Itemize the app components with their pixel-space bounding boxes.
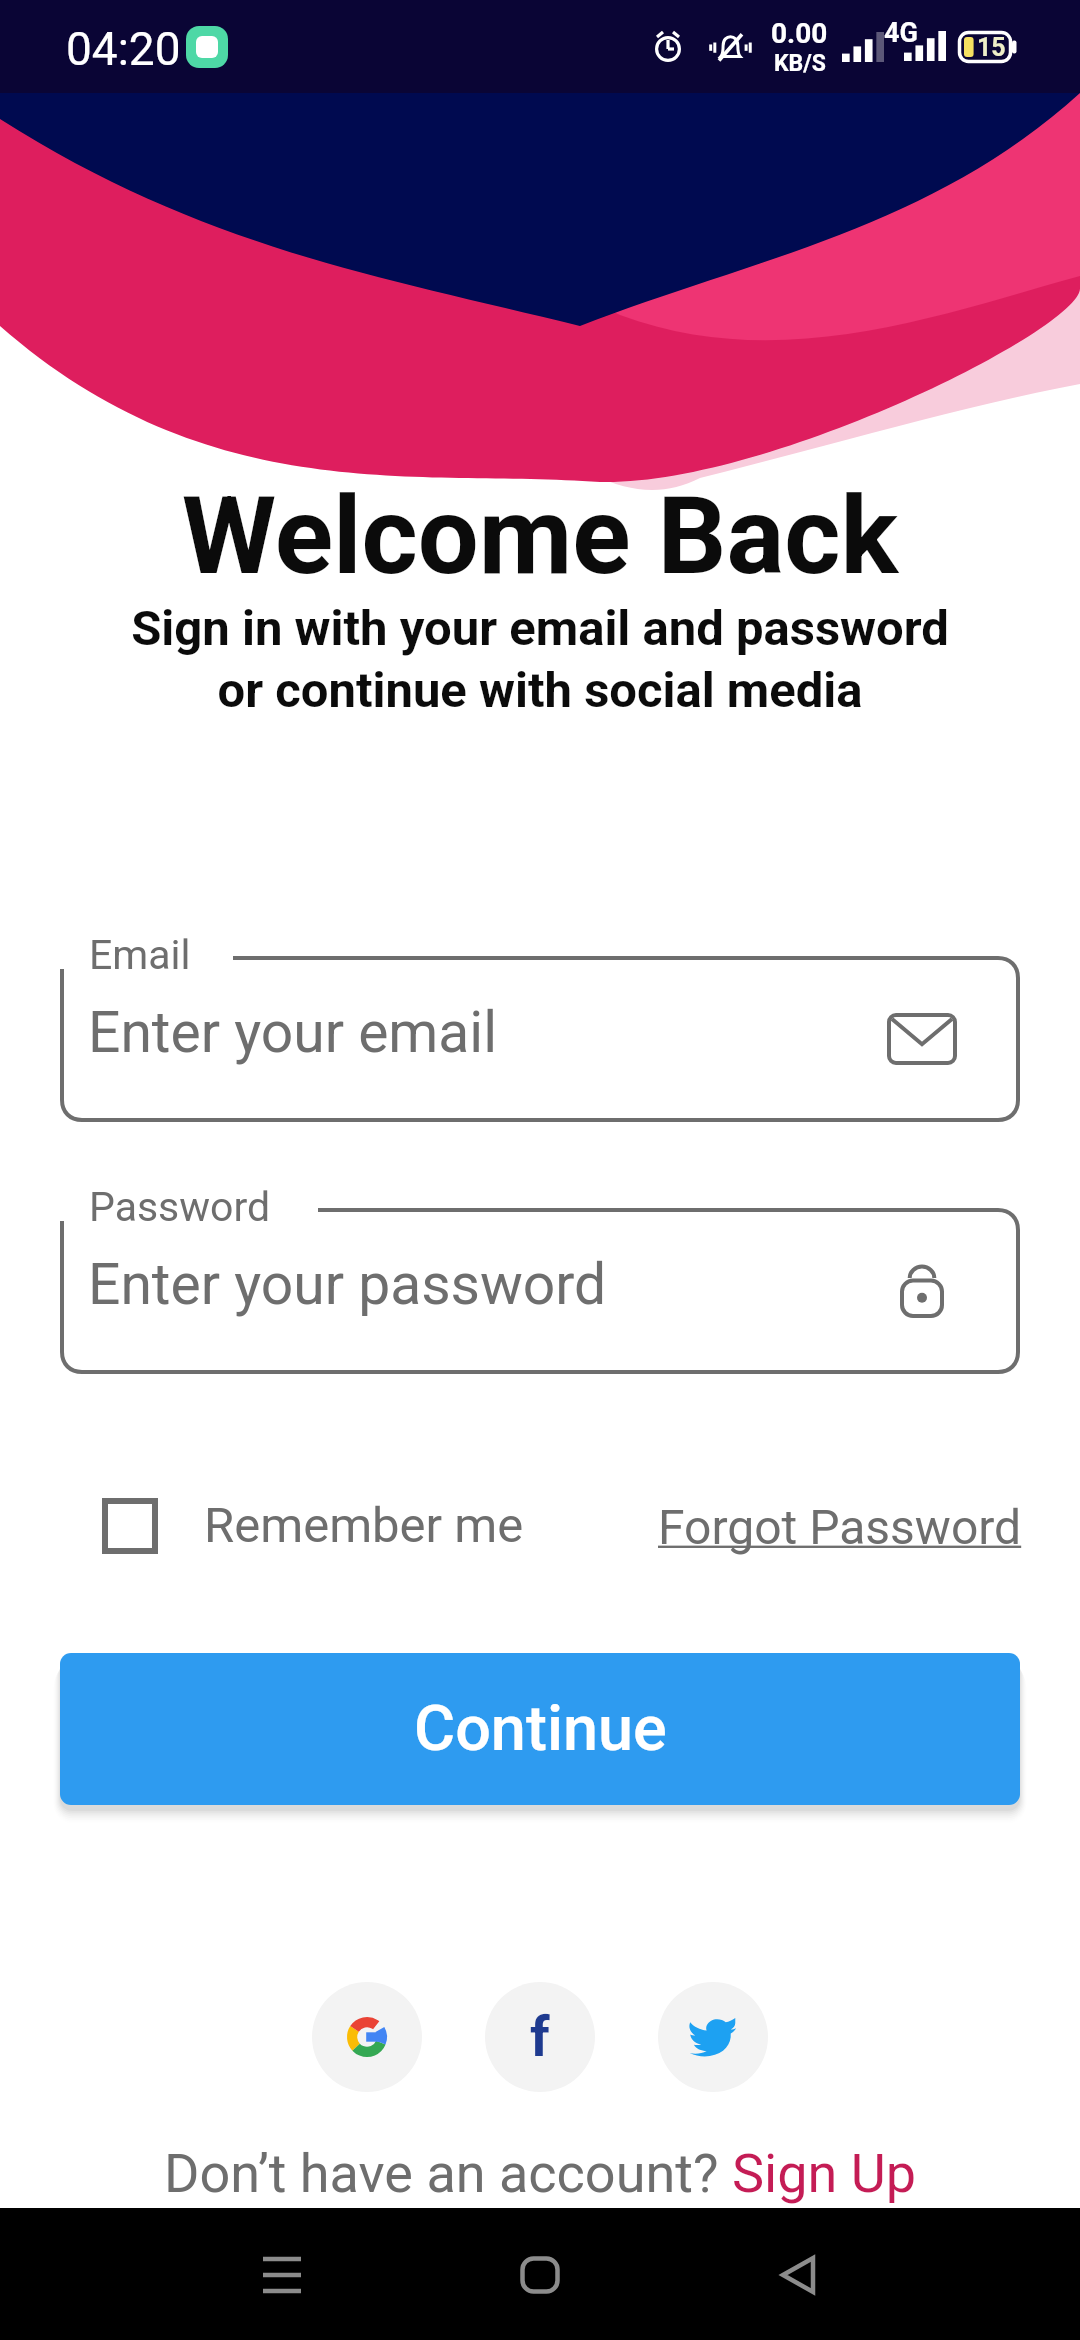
- staticText: Sign in with your email and password or …: [0, 600, 1080, 719]
- button[interactable]: Sign in with Twitter: [658, 1982, 768, 2092]
- button[interactable]: Sign Up: [732, 2142, 917, 2205]
- staticText: Sign Up: [732, 2142, 917, 2205]
- staticText: Forgot Password: [658, 1499, 1022, 1555]
- button[interactable]: Recents: [222, 2215, 342, 2335]
- button[interactable]: Email: [60, 956, 1020, 1122]
- staticText: 15: [977, 33, 1006, 62]
- staticText: Enter your password: [88, 1251, 607, 1318]
- button[interactable]: Home: [480, 2215, 600, 2335]
- staticText: Enter your email: [88, 999, 498, 1066]
- staticText: Remember me: [204, 1497, 524, 1554]
- staticText: 04:20: [66, 22, 181, 76]
- button[interactable]: Sign in with Facebook: [485, 1982, 595, 2092]
- staticText: Password: [89, 1183, 271, 1231]
- button[interactable]: Back: [738, 2215, 858, 2335]
- button[interactable]: Remember me: [102, 1497, 524, 1554]
- button[interactable]: Continue: [60, 1653, 1020, 1805]
- staticText: Welcome Back: [0, 473, 1080, 600]
- staticText: Email: [89, 931, 191, 979]
- staticText: KB/S: [774, 50, 826, 77]
- staticText: f: [530, 2005, 550, 2069]
- button[interactable]: Sign in with Google: [312, 1982, 422, 2092]
- staticText: 0.00: [771, 17, 828, 50]
- staticText: Don’t have an account?: [164, 2142, 732, 2205]
- button[interactable]: Forgot Password: [658, 1499, 1022, 1555]
- button[interactable]: Password: [60, 1208, 1020, 1374]
- staticText: 4G: [884, 17, 918, 49]
- staticText: Continue: [414, 1692, 667, 1766]
